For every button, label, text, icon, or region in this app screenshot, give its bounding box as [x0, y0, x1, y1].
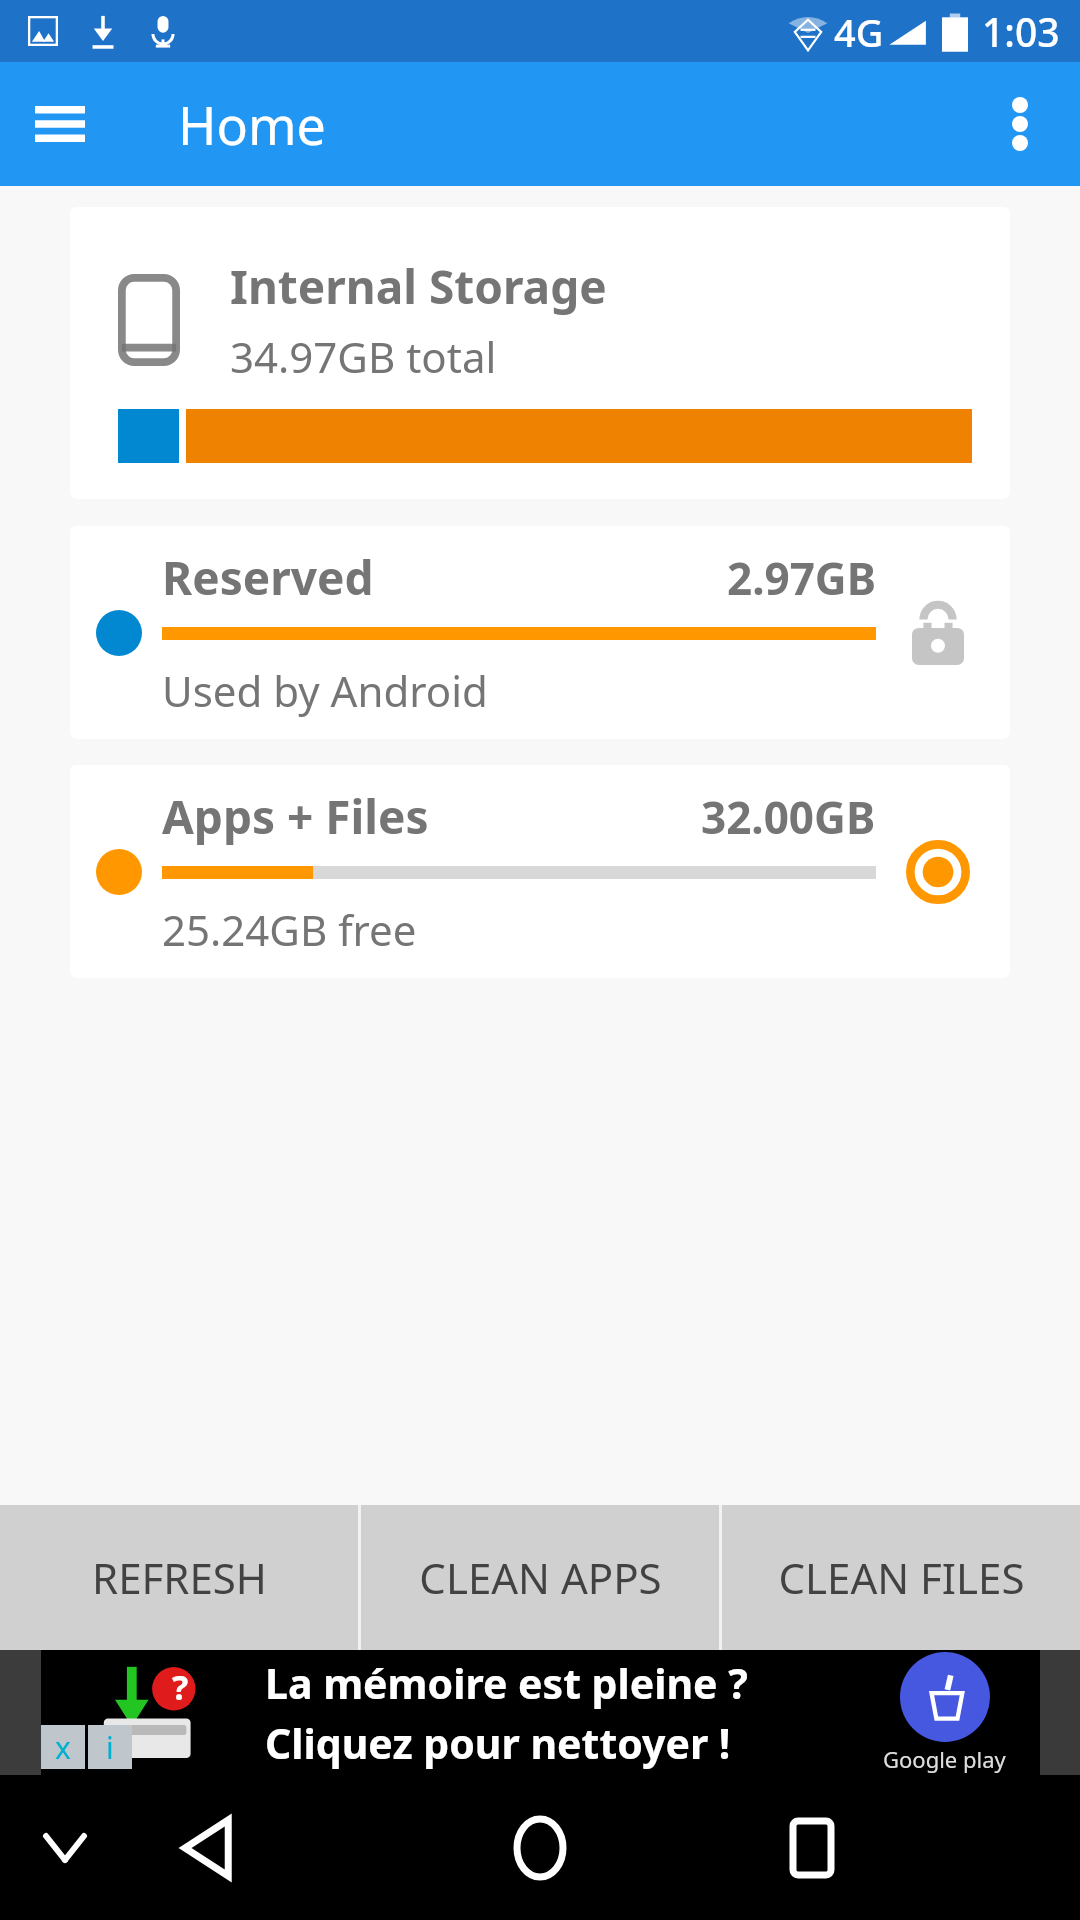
button[interactable]: Advertisement: [0, 1650, 1080, 1775]
button[interactable]: Apps + Files: [70, 765, 1010, 978]
staticText: Apps + Files: [162, 785, 429, 848]
staticText: x: [55, 1727, 71, 1768]
button[interactable]: Hide: [30, 1813, 100, 1883]
staticText: Google play: [883, 1744, 1006, 1774]
staticText: Cliquez pour nettoyer !: [265, 1715, 731, 1771]
button[interactable]: CLEAN FILES: [722, 1505, 1080, 1650]
button[interactable]: More options: [984, 88, 1056, 160]
button[interactable]: Internal Storage: [70, 207, 1010, 499]
button[interactable]: Reserved: [70, 526, 1010, 739]
staticText: La mémoire est pleine ?: [265, 1655, 748, 1711]
button[interactable]: Open navigation drawer: [24, 88, 96, 160]
staticText: i: [106, 1727, 114, 1768]
staticText: REFRESH: [92, 1549, 267, 1606]
staticText: ?: [172, 1664, 189, 1710]
staticText: 25.24GB free: [162, 901, 417, 958]
staticText: Reserved: [162, 546, 374, 609]
button[interactable]: Recent apps: [764, 1800, 860, 1896]
button[interactable]: REFRESH: [0, 1505, 358, 1650]
button[interactable]: CLEAN APPS: [361, 1505, 719, 1650]
staticText: 2.97GB: [727, 548, 876, 608]
button[interactable]: Selected: [894, 828, 982, 916]
staticText: 4G: [834, 6, 884, 58]
staticText: Internal Storage: [230, 255, 607, 318]
button[interactable]: Home: [492, 1800, 588, 1896]
staticText: Used by Android: [162, 662, 488, 719]
staticText: 32.00GB: [701, 787, 876, 847]
staticText: Home: [178, 89, 326, 160]
staticText: 1:03: [982, 5, 1060, 58]
button[interactable]: Back: [160, 1800, 256, 1896]
staticText: CLEAN FILES: [778, 1549, 1025, 1606]
staticText: CLEAN APPS: [419, 1549, 662, 1606]
staticText: 34.97GB total: [230, 328, 497, 385]
button[interactable]: Locked: [894, 589, 982, 677]
